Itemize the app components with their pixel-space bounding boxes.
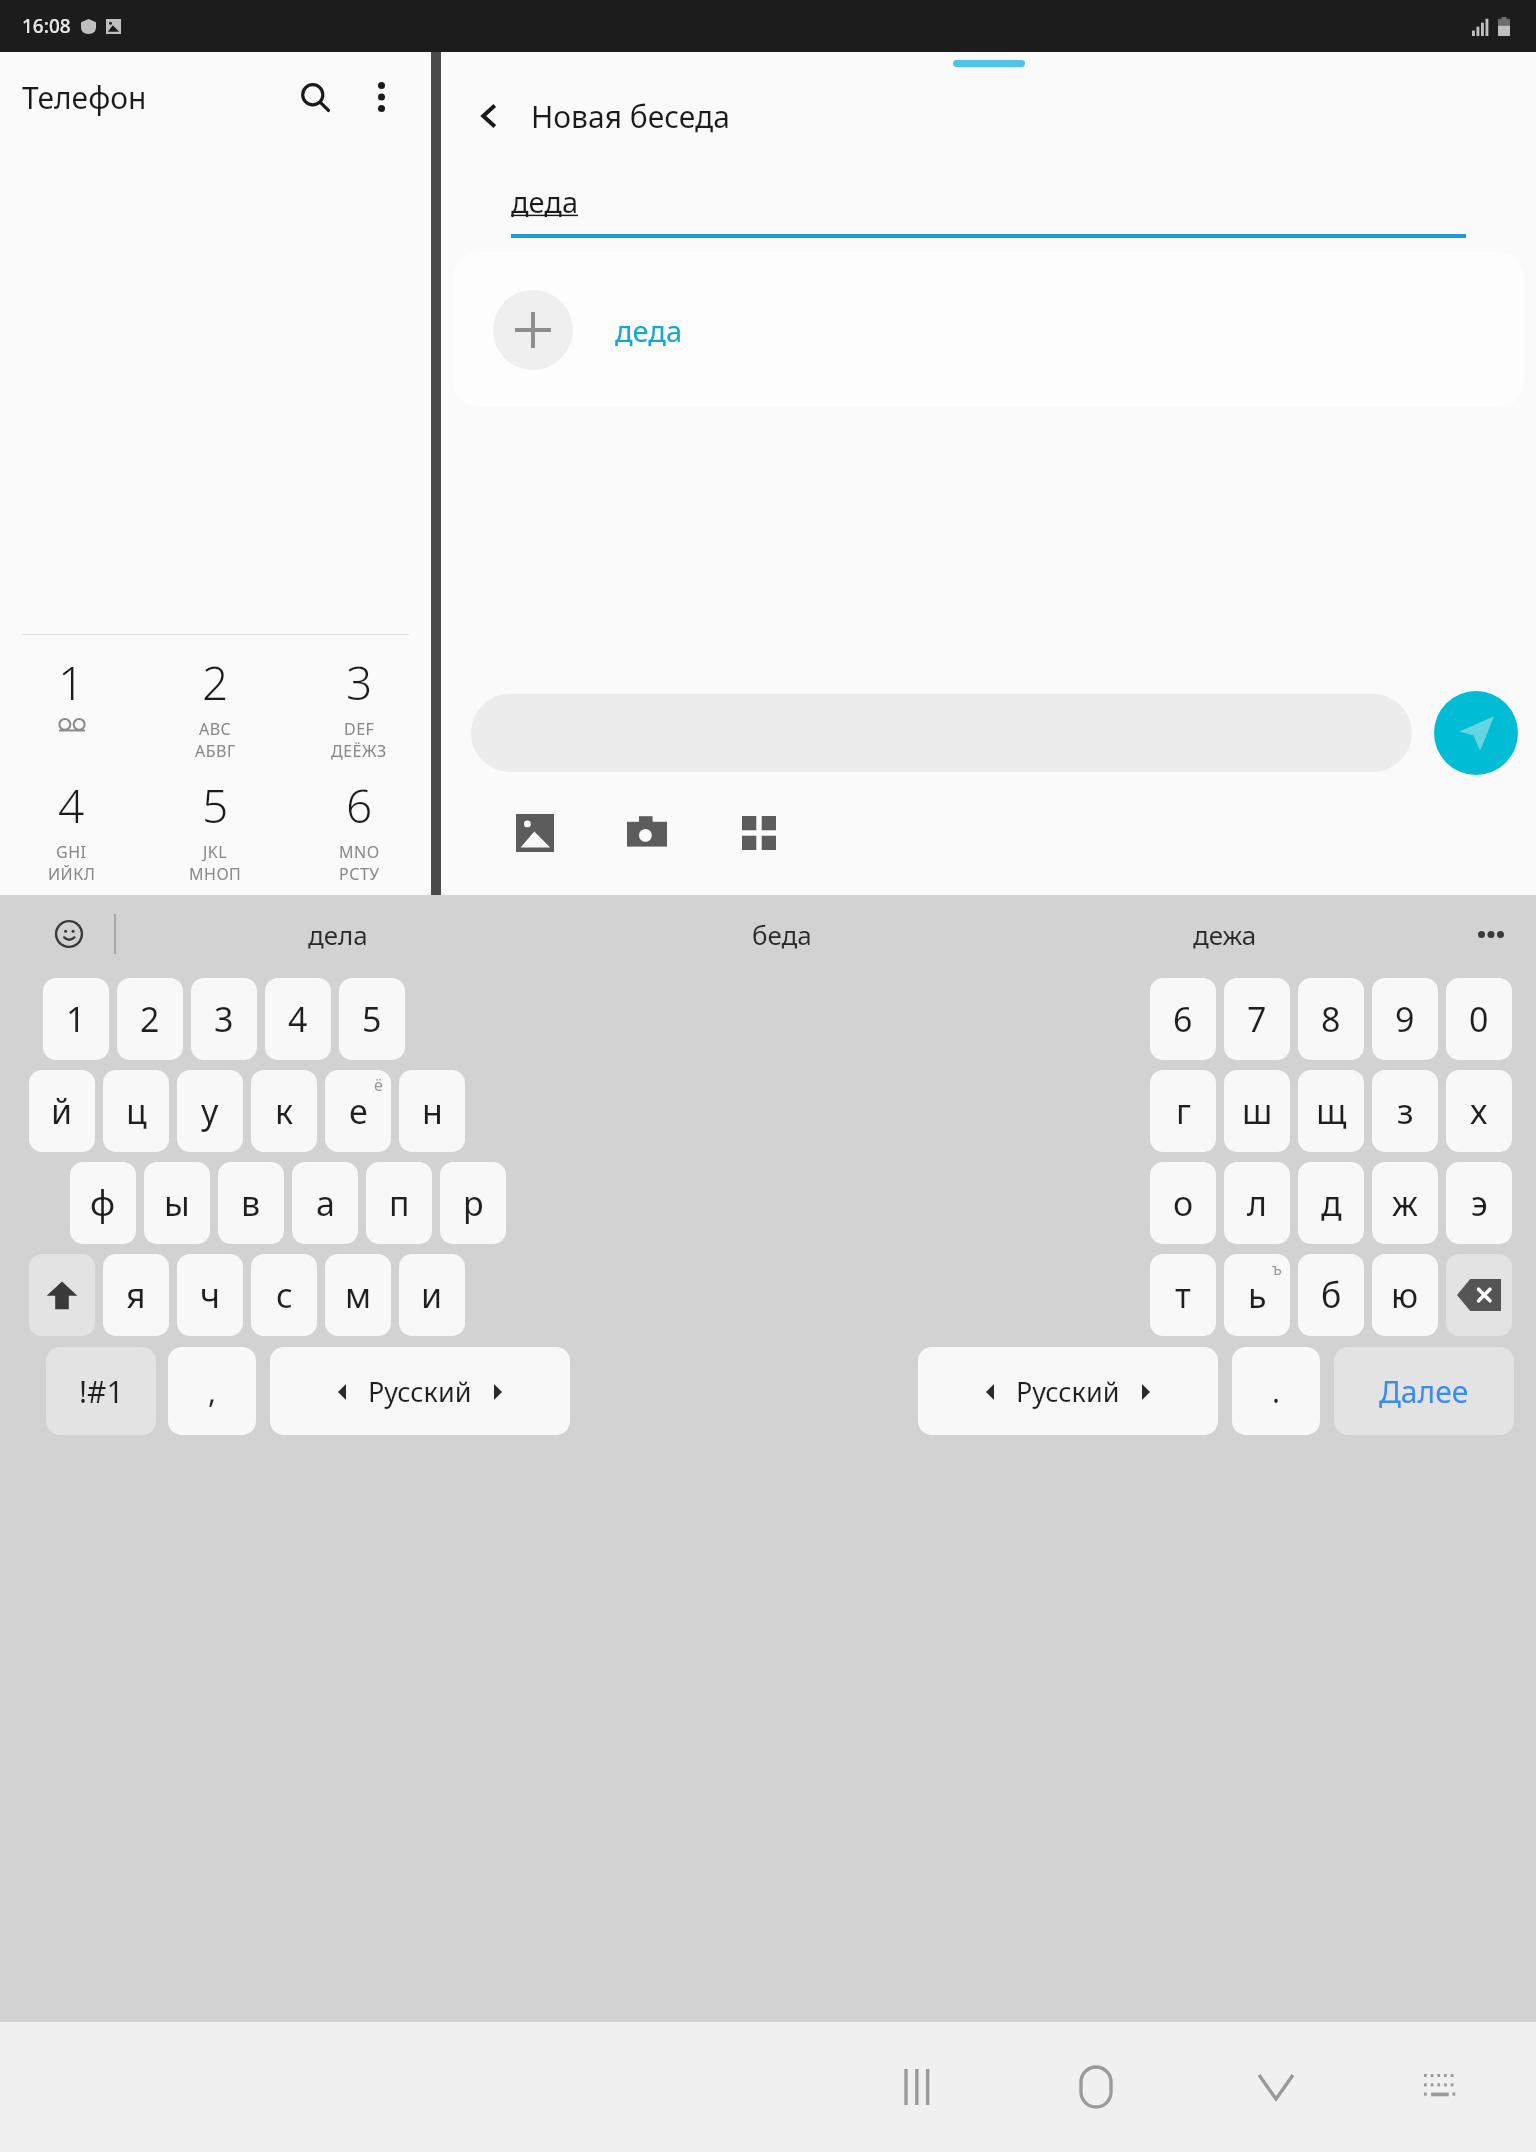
- button[interactable]: More options: [353, 69, 409, 125]
- button[interactable]: Русский: [270, 1347, 570, 1435]
- button[interactable]: More suggestions: [1446, 895, 1536, 973]
- button[interactable]: щ: [1298, 1070, 1364, 1152]
- button[interactable]: More apps: [727, 801, 791, 865]
- button[interactable]: о: [1150, 1162, 1216, 1244]
- button[interactable]: ж: [1372, 1162, 1438, 1244]
- staticText: о: [1173, 1180, 1194, 1226]
- button[interactable]: р: [440, 1162, 506, 1244]
- button[interactable]: Shift: [29, 1254, 95, 1336]
- button[interactable]: Back: [463, 90, 515, 142]
- staticText: щ: [1316, 1088, 1347, 1134]
- button[interactable]: я: [103, 1254, 169, 1336]
- staticText: Далее: [1379, 1371, 1469, 1412]
- button[interactable]: м: [325, 1254, 391, 1336]
- staticText: ,: [208, 1371, 217, 1412]
- staticText: ш: [1242, 1088, 1273, 1134]
- button[interactable]: 3: [287, 651, 431, 762]
- button[interactable]: 6: [287, 774, 431, 885]
- button[interactable]: н: [399, 1070, 465, 1152]
- staticText: б: [1321, 1272, 1342, 1318]
- button[interactable]: Русский: [918, 1347, 1218, 1435]
- button[interactable]: г: [1150, 1070, 1216, 1152]
- staticText: ИЙКЛ: [48, 863, 96, 885]
- button[interactable]: а: [292, 1162, 358, 1244]
- staticText: 1: [66, 996, 86, 1042]
- button[interactable]: 6: [1150, 978, 1216, 1060]
- button[interactable]: 1: [0, 651, 143, 748]
- button[interactable]: 4: [265, 978, 331, 1060]
- button[interactable]: ф: [70, 1162, 136, 1244]
- button[interactable]: з: [1372, 1070, 1438, 1152]
- staticText: деда: [511, 182, 579, 221]
- button[interactable]: .: [1232, 1347, 1320, 1435]
- button[interactable]: в: [218, 1162, 284, 1244]
- button[interactable]: 2: [117, 978, 183, 1060]
- button[interactable]: деда: [453, 252, 1524, 407]
- staticText: к: [275, 1088, 294, 1134]
- button[interactable]: с: [251, 1254, 317, 1336]
- staticText: з: [1397, 1088, 1414, 1134]
- button[interactable]: и: [399, 1254, 465, 1336]
- staticText: РСТУ: [339, 863, 380, 885]
- button[interactable]: к: [251, 1070, 317, 1152]
- button[interactable]: 2: [143, 651, 287, 762]
- staticText: АБВГ: [195, 740, 236, 762]
- button[interactable]: ь: [1224, 1254, 1290, 1336]
- button[interactable]: ш: [1224, 1070, 1290, 1152]
- button[interactable]: Keyboard settings: [1366, 2022, 1516, 2152]
- staticText: 2: [140, 996, 160, 1042]
- button[interactable]: 1: [43, 978, 109, 1060]
- button[interactable]: ю: [1372, 1254, 1438, 1336]
- staticText: деда: [615, 311, 683, 350]
- button[interactable]: Send: [1434, 691, 1518, 775]
- button[interactable]: беда: [560, 895, 1003, 973]
- button[interactable]: х: [1446, 1070, 1512, 1152]
- button[interactable]: ы: [144, 1162, 210, 1244]
- button[interactable]: Hide keyboard: [1186, 2022, 1366, 2152]
- staticText: л: [1247, 1180, 1267, 1226]
- staticText: н: [422, 1088, 443, 1134]
- button[interactable]: б: [1298, 1254, 1364, 1336]
- button[interactable]: 8: [1298, 978, 1364, 1060]
- button[interactable]: ,: [168, 1347, 256, 1435]
- button[interactable]: л: [1224, 1162, 1290, 1244]
- button[interactable]: т: [1150, 1254, 1216, 1336]
- button[interactable]: е: [325, 1070, 391, 1152]
- button[interactable]: Camera: [615, 801, 679, 865]
- staticText: 5: [362, 996, 382, 1042]
- button[interactable]: д: [1298, 1162, 1364, 1244]
- button[interactable]: ц: [103, 1070, 169, 1152]
- button[interactable]: э: [1446, 1162, 1512, 1244]
- button[interactable]: Home: [1006, 2022, 1186, 2152]
- button[interactable]: у: [177, 1070, 243, 1152]
- staticText: 4: [58, 774, 85, 837]
- staticText: ДЕЁЖЗ: [331, 740, 387, 762]
- button[interactable]: 5: [339, 978, 405, 1060]
- button[interactable]: ч: [177, 1254, 243, 1336]
- staticText: дежа: [1193, 917, 1257, 952]
- staticText: ж: [1392, 1180, 1418, 1226]
- button[interactable]: дежа: [1003, 895, 1446, 973]
- button[interactable]: Emoji: [46, 911, 92, 957]
- button[interactable]: 3: [191, 978, 257, 1060]
- button[interactable]: й: [29, 1070, 95, 1152]
- staticText: 5: [202, 774, 229, 837]
- staticText: Русский: [1016, 1373, 1120, 1410]
- button[interactable]: дела: [116, 895, 560, 973]
- button[interactable]: п: [366, 1162, 432, 1244]
- button[interactable]: 9: [1372, 978, 1438, 1060]
- button[interactable]: !#1: [46, 1347, 156, 1435]
- button[interactable]: 0: [1446, 978, 1512, 1060]
- button[interactable]: 4: [0, 774, 143, 885]
- staticText: ABC: [199, 718, 232, 740]
- staticText: Телефон: [22, 77, 147, 118]
- staticText: ц: [126, 1088, 147, 1134]
- button[interactable]: 5: [143, 774, 287, 885]
- button[interactable]: 7: [1224, 978, 1290, 1060]
- button[interactable]: Backspace: [1446, 1254, 1512, 1336]
- button[interactable]: Gallery: [503, 801, 567, 865]
- button[interactable]: Recents: [826, 2022, 1006, 2152]
- button[interactable]: Search: [287, 69, 343, 125]
- button[interactable]: Далее: [1334, 1347, 1514, 1435]
